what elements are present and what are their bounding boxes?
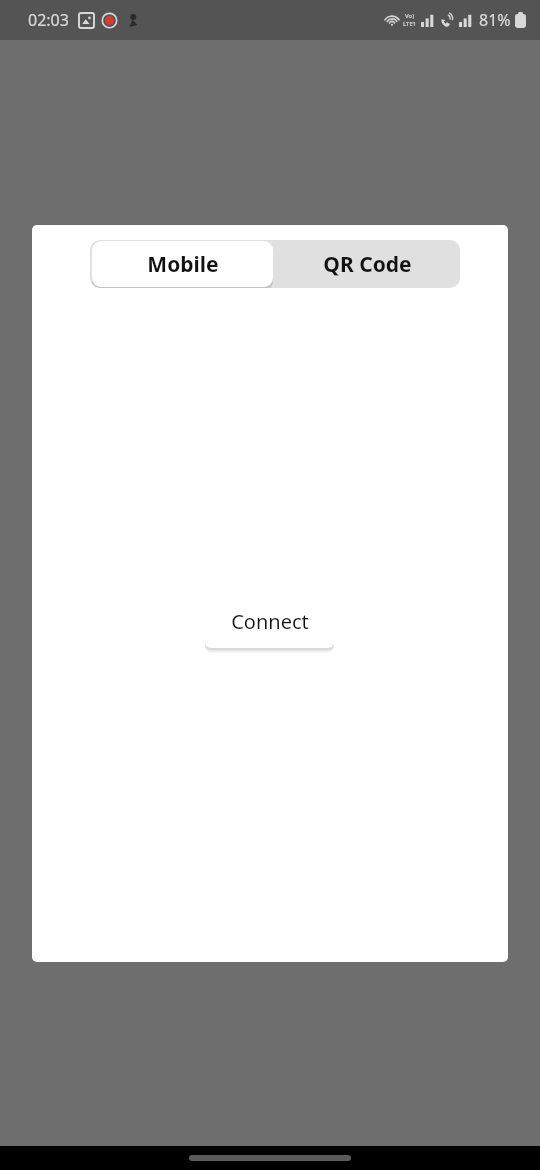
staticText: 02:03 (28, 9, 69, 31)
button[interactable]: QR Code (275, 240, 460, 288)
staticText: Connect (231, 608, 309, 635)
staticText: Mobile (147, 250, 219, 279)
staticText: 81% (479, 9, 511, 31)
staticText: Vo) (405, 12, 415, 20)
button[interactable]: Connect (205, 594, 334, 648)
staticText: LTE1 (403, 20, 417, 28)
staticText: QR Code (323, 250, 412, 279)
button[interactable]: Mobile (90, 240, 275, 288)
